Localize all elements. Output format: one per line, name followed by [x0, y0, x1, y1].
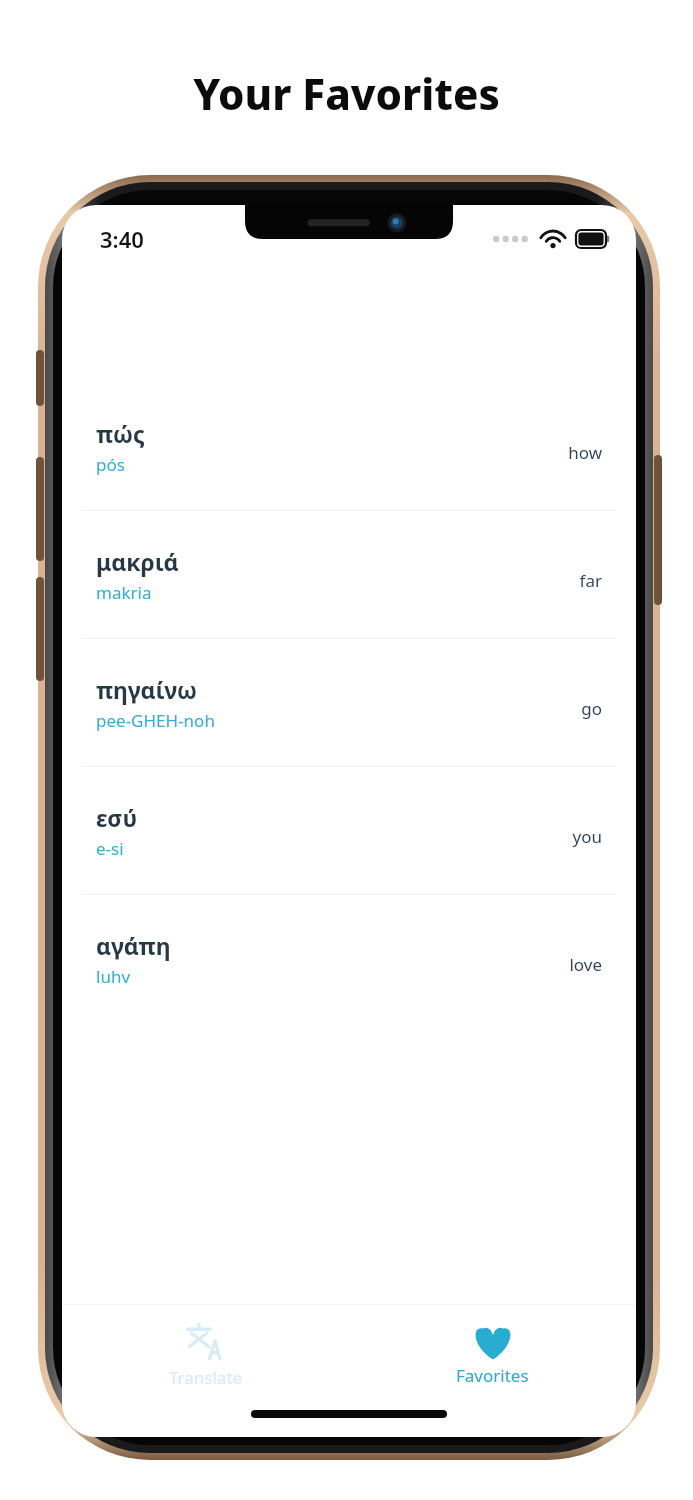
staticText: εσύ — [96, 802, 138, 833]
staticText: πώς — [96, 418, 145, 449]
staticText: 3:40 — [100, 224, 144, 254]
staticText: e-si — [96, 837, 124, 860]
staticText: Your Favorites — [193, 65, 500, 122]
staticText: πηγαίνω — [96, 674, 198, 705]
button[interactable]: αγάπη — [62, 895, 636, 1022]
staticText: how — [568, 441, 602, 464]
button[interactable]: πώς — [62, 383, 636, 510]
staticText: Favorites — [456, 1364, 529, 1387]
staticText: love — [569, 953, 602, 976]
staticText: far — [579, 569, 602, 592]
other: Translate — [184, 1320, 228, 1364]
button[interactable]: μακριά — [62, 511, 636, 638]
staticText: μακριά — [96, 546, 179, 577]
button[interactable]: εσύ — [62, 767, 636, 894]
button[interactable]: πηγαίνω — [62, 639, 636, 766]
staticText: go — [581, 697, 602, 720]
other: Favorites — [471, 1322, 515, 1362]
staticText: makria — [96, 581, 152, 604]
button[interactable]: Favorites — [349, 1305, 636, 1403]
button[interactable]: Translate — [62, 1305, 349, 1403]
staticText: pós — [96, 453, 125, 476]
staticText: Translate — [169, 1366, 243, 1389]
staticText: you — [572, 825, 602, 848]
staticText: pee-GHEH-noh — [96, 709, 215, 732]
staticText: luhv — [96, 965, 131, 988]
staticText: αγάπη — [96, 930, 171, 961]
